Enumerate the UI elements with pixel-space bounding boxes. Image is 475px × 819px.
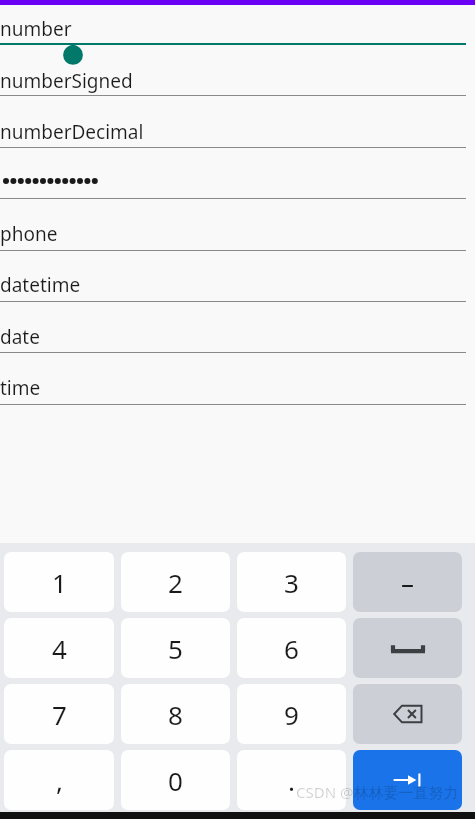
button[interactable]: date	[0, 324, 466, 350]
staticText: numberDecimal	[0, 119, 144, 145]
button[interactable]: Next	[353, 750, 462, 810]
button[interactable]: 3	[237, 552, 346, 612]
button[interactable]: phone	[0, 221, 466, 247]
button[interactable]: Backspace	[353, 684, 462, 744]
staticText: 7	[52, 697, 67, 732]
staticText: 5	[168, 631, 183, 666]
staticText: 1	[52, 565, 67, 600]
staticText: CSDN @林林要一直努力	[296, 782, 459, 802]
button[interactable]: numberSigned	[0, 68, 466, 94]
button[interactable]: 7	[4, 684, 114, 744]
button[interactable]: 1	[4, 552, 114, 612]
staticText: datetime	[0, 272, 81, 298]
button[interactable]: 5	[121, 618, 230, 678]
button[interactable]: 9	[237, 684, 346, 744]
staticText: .	[288, 763, 295, 798]
staticText: 2	[168, 565, 183, 600]
button[interactable]: number	[0, 16, 466, 42]
staticText: 3	[284, 565, 299, 600]
button[interactable]: numberDecimal	[0, 119, 466, 145]
button[interactable]: 0	[121, 750, 230, 810]
staticText: 8	[168, 697, 183, 732]
button[interactable]: 6	[237, 618, 346, 678]
button[interactable]: 8	[121, 684, 230, 744]
button[interactable]: ,	[4, 750, 114, 810]
staticText: date	[0, 324, 40, 350]
staticText: number	[0, 16, 72, 42]
staticText: phone	[0, 221, 58, 247]
staticText: ,	[56, 763, 63, 798]
staticText: 0	[168, 763, 183, 798]
staticText: 6	[284, 631, 299, 666]
button[interactable]: time	[0, 375, 466, 401]
button[interactable]: .	[237, 750, 346, 810]
staticText: numberSigned	[0, 68, 133, 94]
staticText: 4	[52, 631, 67, 666]
staticText: time	[0, 375, 41, 401]
staticText: –	[401, 565, 415, 600]
button[interactable]: Space	[353, 618, 462, 678]
button[interactable]: 4	[4, 618, 114, 678]
button[interactable]: datetime	[0, 272, 466, 298]
button[interactable]: –	[353, 552, 462, 612]
button[interactable]: 2	[121, 552, 230, 612]
staticText: 9	[284, 697, 299, 732]
